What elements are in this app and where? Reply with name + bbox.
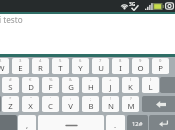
staticText: N	[108, 101, 114, 112]
staticText: "	[30, 96, 32, 102]
staticText: '	[50, 96, 51, 102]
button[interactable]: '	[42, 96, 59, 112]
staticText: 9	[139, 58, 142, 64]
button[interactable]: .	[106, 115, 125, 130]
staticText: R	[38, 63, 43, 74]
staticText: 4	[39, 58, 42, 64]
button[interactable]: %	[42, 77, 59, 93]
button[interactable]: 9	[132, 58, 149, 74]
staticText: 8	[119, 58, 122, 64]
button[interactable]: 6	[72, 58, 89, 74]
staticText: M	[127, 101, 135, 112]
staticText: 12#	[132, 120, 143, 128]
staticText: %	[49, 77, 53, 83]
button[interactable]: 5	[52, 58, 69, 74]
staticText: .	[114, 120, 117, 130]
staticText: I	[119, 63, 122, 74]
staticText: &	[69, 77, 73, 83]
staticText: 2	[0, 58, 2, 64]
staticText: ;	[90, 96, 92, 102]
staticText: E	[18, 63, 23, 74]
staticText: U	[98, 63, 104, 74]
staticText: 3G	[129, 1, 136, 8]
staticText: X	[28, 101, 33, 112]
button[interactable]: 7	[92, 58, 109, 74]
staticText: ?	[130, 96, 132, 102]
staticText: C	[48, 101, 53, 112]
button[interactable]: ?	[122, 96, 139, 112]
button[interactable]: +	[102, 77, 119, 93]
staticText: L	[148, 82, 153, 93]
button[interactable]: 0	[152, 58, 169, 74]
staticText: T	[58, 63, 63, 74]
staticText: P	[158, 63, 163, 74]
button[interactable]: )	[142, 77, 159, 93]
button[interactable]: Backspace	[142, 96, 175, 112]
staticText: #	[9, 77, 12, 83]
button[interactable]: &	[62, 77, 79, 93]
staticText: B	[88, 101, 94, 112]
staticText: )	[150, 77, 152, 83]
staticText: 0	[159, 58, 162, 64]
button[interactable]: :	[62, 96, 79, 112]
button[interactable]: ,	[18, 115, 36, 130]
staticText: +	[109, 77, 112, 83]
staticText: Y	[78, 63, 83, 74]
staticText: €	[29, 77, 32, 83]
staticText: W	[0, 63, 5, 74]
staticText: 3	[19, 58, 22, 64]
staticText: -	[90, 77, 92, 83]
button[interactable]: 12#	[127, 115, 148, 130]
staticText: 6	[79, 58, 82, 64]
button[interactable]: €	[22, 77, 39, 93]
button[interactable]: 8	[112, 58, 129, 74]
staticText: 5	[59, 58, 62, 64]
staticText: K	[128, 82, 133, 93]
button[interactable]: 2	[0, 58, 9, 74]
staticText: 7	[99, 58, 102, 64]
staticText: G	[68, 82, 74, 93]
button[interactable]: #	[2, 77, 19, 93]
button[interactable]: Enter	[149, 115, 175, 130]
staticText: Z	[8, 101, 13, 112]
button[interactable]: ;	[82, 96, 99, 112]
staticText: :	[70, 96, 72, 102]
staticText: O	[137, 63, 144, 74]
button[interactable]: 3	[12, 58, 29, 74]
staticText: (	[130, 77, 132, 83]
staticText: J	[109, 82, 112, 93]
staticText: ,	[26, 120, 29, 130]
button[interactable]: Space	[38, 115, 104, 130]
button[interactable]: !	[102, 96, 119, 112]
staticText: F	[48, 82, 53, 93]
button[interactable]: Shift	[0, 96, 1, 112]
button[interactable]: *	[2, 96, 19, 112]
staticText: H	[88, 82, 94, 93]
staticText: D	[28, 82, 34, 93]
staticText: !	[110, 96, 112, 102]
staticText: i testo	[0, 14, 23, 25]
button[interactable]: 4	[32, 58, 49, 74]
button[interactable]: -	[82, 77, 99, 93]
button[interactable]: (	[122, 77, 139, 93]
staticText: *	[9, 96, 12, 102]
staticText: S	[8, 82, 13, 93]
staticText: V	[68, 101, 73, 112]
button[interactable]: "	[22, 96, 39, 112]
